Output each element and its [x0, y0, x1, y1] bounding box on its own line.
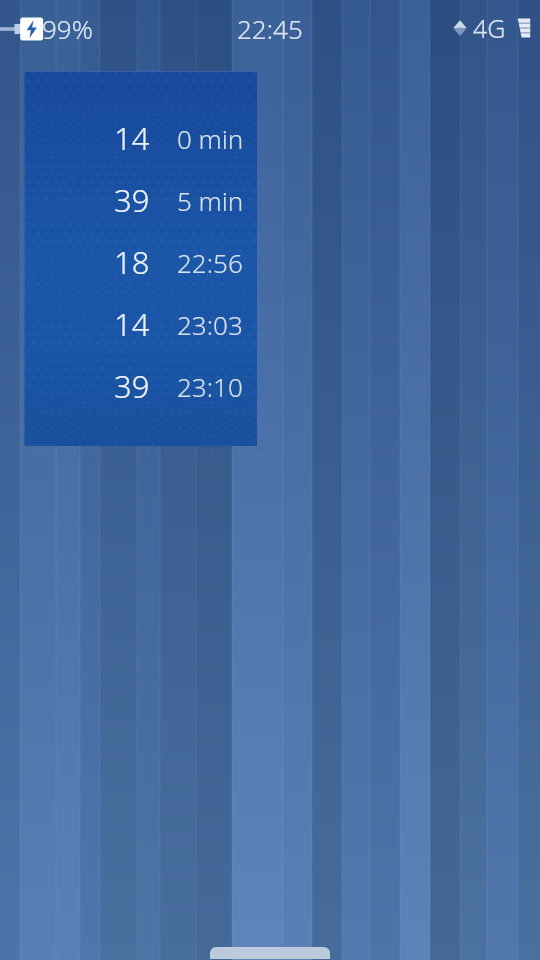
staticText: 0 min [177, 121, 244, 156]
button[interactable]: 14 [24, 107, 257, 169]
staticText: 39 [114, 179, 150, 221]
button[interactable]: 14 [24, 293, 257, 355]
staticText: 22:45 [237, 11, 303, 46]
other: Signal strength [510, 14, 536, 42]
other: Battery charging [0, 15, 44, 43]
other: Mobile data activity [447, 15, 473, 41]
button[interactable]: 39 [24, 355, 257, 417]
staticText: 22:56 [177, 245, 243, 280]
staticText: 4G [473, 11, 506, 45]
staticText: 99% [42, 11, 93, 46]
staticText: 18 [114, 241, 150, 283]
button[interactable]: 14 [24, 71, 257, 446]
button[interactable]: 18 [24, 231, 257, 293]
staticText: 23:10 [177, 369, 243, 404]
staticText: 23:03 [177, 307, 243, 342]
staticText: 14 [114, 117, 150, 159]
staticText: 14 [114, 303, 150, 345]
button[interactable]: 39 [24, 169, 257, 231]
staticText: 39 [114, 365, 150, 407]
staticText: 5 min [177, 183, 244, 218]
